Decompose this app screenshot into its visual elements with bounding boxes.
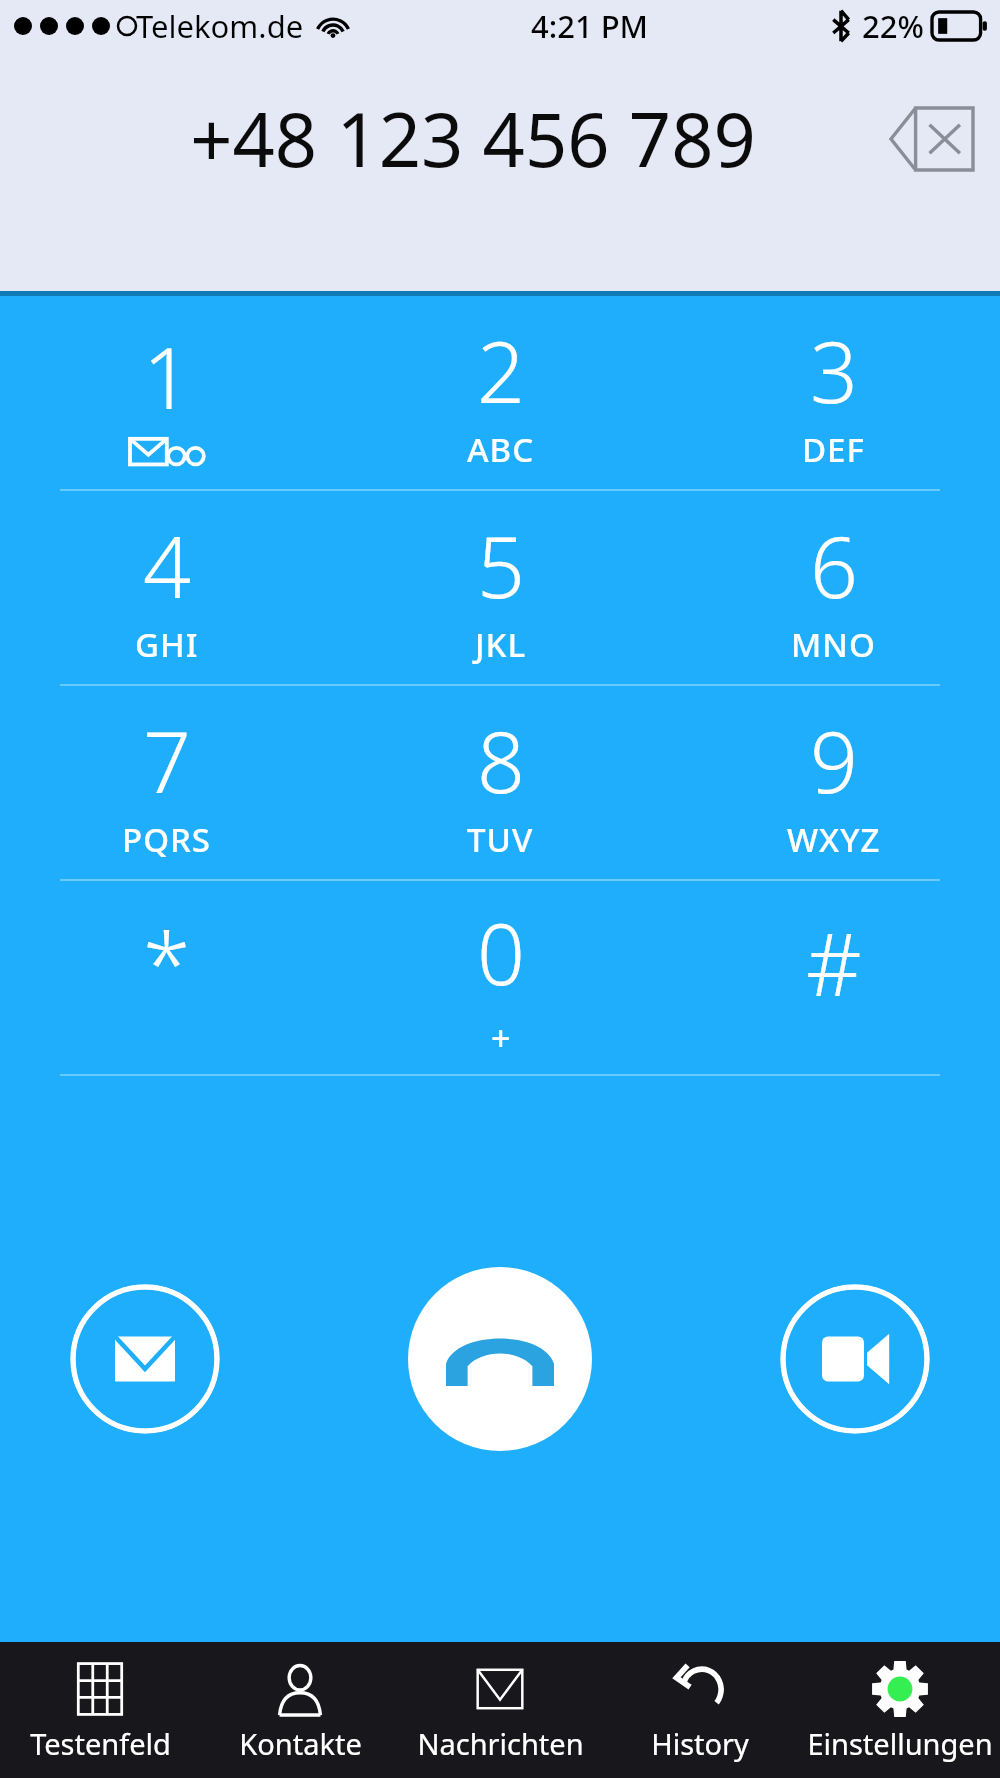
staticText: WXYZ [787, 817, 881, 862]
button[interactable]: 2 [334, 296, 667, 489]
button[interactable]: Testenfeld [0, 1642, 200, 1778]
staticText: TUV [467, 817, 534, 862]
button[interactable]: 6 [667, 491, 1000, 684]
button[interactable]: 3 [667, 296, 1000, 489]
button[interactable]: Kontakte [200, 1642, 400, 1778]
button[interactable]: History [600, 1642, 800, 1778]
staticText: Kontakte [239, 1724, 362, 1763]
button[interactable]: # [667, 881, 1000, 1074]
staticText: ABC [467, 427, 535, 472]
staticText: 1 [143, 319, 191, 433]
button[interactable]: Call [408, 1267, 592, 1451]
staticText: 0 [477, 895, 525, 1009]
staticText: 4 [143, 508, 191, 622]
staticText: Nachrichten [417, 1724, 584, 1763]
staticText: + [491, 1015, 512, 1061]
staticText: 2 [477, 313, 525, 427]
staticText: 3 [810, 313, 858, 427]
staticText: * [143, 904, 191, 1021]
staticText: # [806, 904, 862, 1021]
staticText: PQRS [122, 817, 212, 862]
staticText: 5 [477, 508, 525, 622]
button[interactable]: Nachrichten [400, 1642, 600, 1778]
staticText: +48 123 456 789 [60, 88, 886, 189]
button[interactable]: Send message [70, 1284, 220, 1434]
staticText: DEF [802, 427, 865, 472]
button[interactable]: Einstellungen [800, 1642, 1000, 1778]
button[interactable]: 5 [334, 491, 667, 684]
button[interactable]: * [0, 881, 334, 1074]
staticText: 22% [862, 5, 924, 47]
button[interactable]: Video call [780, 1284, 930, 1434]
staticText: GHI [135, 622, 199, 667]
button[interactable]: Backspace [886, 99, 978, 179]
staticText: 6 [810, 508, 858, 622]
button[interactable]: 9 [667, 686, 1000, 879]
staticText: 4:21 PM [531, 5, 649, 47]
staticText: Testenfeld [30, 1724, 171, 1763]
staticText: JKL [475, 622, 527, 667]
button[interactable]: 8 [334, 686, 667, 879]
staticText: Einstellungen [807, 1724, 993, 1763]
staticText: History [651, 1724, 749, 1763]
staticText: 8 [477, 703, 525, 817]
button[interactable]: 0 [334, 881, 667, 1074]
staticText: 7 [143, 703, 191, 817]
staticText: 9 [810, 703, 858, 817]
staticText: Telekom.de [136, 5, 304, 47]
staticText: MNO [791, 622, 876, 667]
button[interactable]: 1 [0, 296, 334, 489]
button[interactable]: 7 [0, 686, 334, 879]
button[interactable]: 4 [0, 491, 334, 684]
